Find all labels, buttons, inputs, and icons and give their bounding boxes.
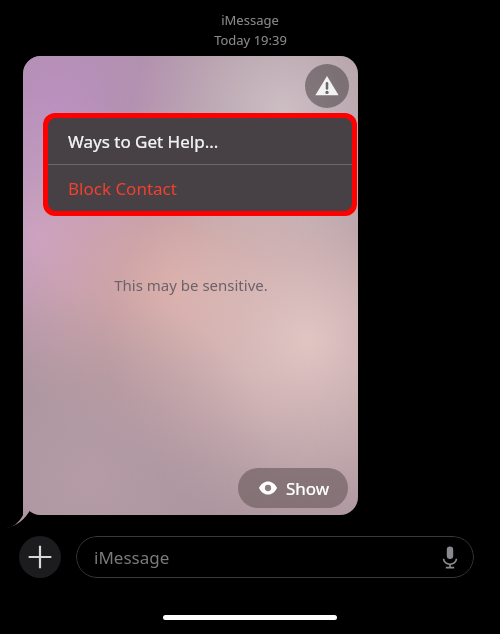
other: Dictate [436, 543, 464, 571]
button[interactable]: iMessage [76, 536, 474, 578]
staticText: Today 19:39 [214, 31, 287, 49]
staticText: iMessage [221, 11, 279, 29]
staticText: This may be sensitive. [114, 275, 268, 295]
button[interactable]: Add attachment [19, 536, 61, 578]
button[interactable]: Block Contact [48, 165, 352, 211]
staticText: iMessage [94, 546, 170, 569]
button[interactable]: Ways to Get Help... [48, 118, 352, 164]
staticText: Ways to Get Help... [68, 130, 219, 153]
staticText: Show [286, 477, 330, 500]
staticText: Block Contact [68, 177, 177, 200]
button[interactable]: Sensitive content warning [305, 64, 349, 108]
button[interactable]: Show [238, 468, 348, 508]
